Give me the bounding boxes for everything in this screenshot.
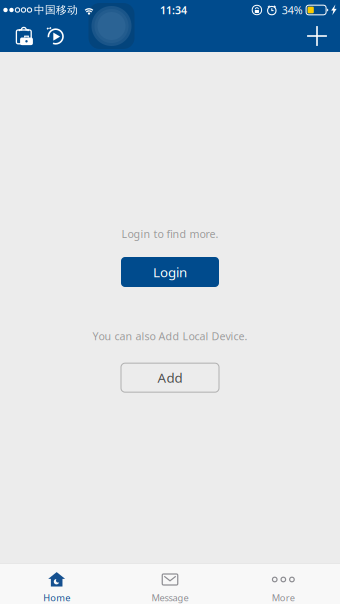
staticText: Home [43,591,70,604]
staticText: Message [151,591,188,604]
button[interactable]: Devices [8,20,40,52]
staticText: 中国移动 [34,3,78,16]
staticText: More [272,591,295,604]
button[interactable]: Add [121,363,219,392]
staticText: 34% [282,3,303,17]
button[interactable]: Message [113,563,227,604]
staticText: Add [157,369,182,386]
button[interactable]: Home [0,563,113,604]
button[interactable]: More [227,563,340,604]
staticText: Login to find more. [121,227,218,241]
staticText: Login [153,263,187,281]
button[interactable]: Add [300,20,334,52]
staticText: 11:34 [160,3,187,17]
staticText: You can also Add Local Device. [92,329,247,343]
button[interactable]: Login [121,257,219,287]
button[interactable]: Playback [40,20,70,52]
